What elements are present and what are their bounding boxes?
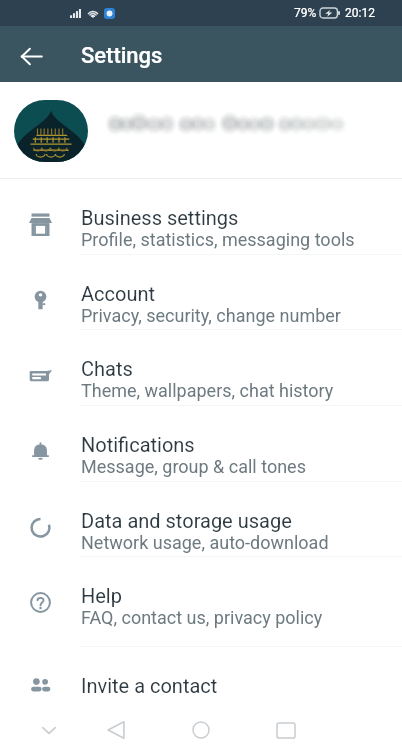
button[interactable]: Notifications [0,406,402,482]
staticText: 20:12 [345,6,375,20]
staticText: Data and storage usage [81,509,292,532]
staticText: Notifications [81,433,195,456]
button[interactable]: Back [92,710,140,750]
staticText: Chats [81,357,133,380]
button[interactable]: Account [0,255,402,331]
staticText: Theme, wallpapers, chat history [81,380,334,401]
staticText: Account [81,282,156,305]
staticText: Message, group & call tones [81,456,306,477]
button[interactable]: Business settings [0,179,402,255]
button[interactable]: Data and storage usage [0,482,402,558]
staticText: Settings [81,43,163,69]
staticText: FAQ, contact us, privacy policy [81,607,323,628]
staticText: Profile, statistics, messaging tools [81,229,355,250]
button[interactable]: Recents [262,710,310,750]
button[interactable]: Back [8,33,54,79]
staticText: Help [81,584,122,607]
button[interactable] [0,82,402,178]
staticText: Network usage, auto-download [81,532,329,553]
staticText: Invite a contact [81,674,218,697]
staticText: 79% [294,6,317,20]
button[interactable]: Invite a contact [0,647,402,723]
button[interactable]: Hide keyboard [25,710,73,750]
button[interactable]: Home [177,710,225,750]
staticText: Business settings [81,206,239,229]
button[interactable]: Help [0,557,402,647]
staticText: Privacy, security, change number [81,305,341,326]
button[interactable]: Chats [0,330,402,406]
